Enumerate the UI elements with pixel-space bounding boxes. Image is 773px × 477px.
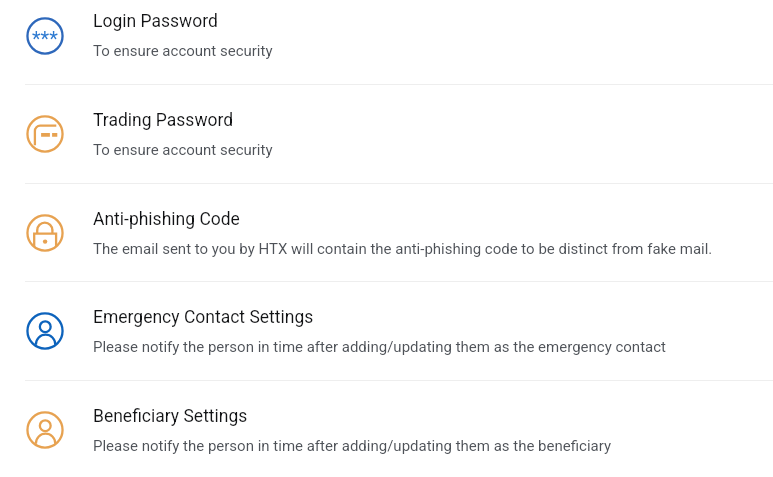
- staticText: To ensure account security: [93, 141, 273, 159]
- staticText: Trading Password: [93, 110, 234, 131]
- staticText: Emergency Contact Settings: [93, 307, 314, 328]
- staticText: Beneficiary Settings: [93, 406, 248, 427]
- button[interactable]: Trading Password: [0, 85, 773, 184]
- button[interactable]: Anti-phishing Code: [0, 184, 773, 283]
- staticText: Please notify the person in time after a…: [93, 437, 612, 455]
- staticText: The email sent to you by HTX will contai…: [93, 240, 713, 258]
- staticText: ***: [32, 27, 58, 50]
- button[interactable]: ***: [0, 0, 773, 85]
- staticText: To ensure account security: [93, 42, 273, 60]
- button[interactable]: Emergency Contact Settings: [0, 282, 773, 381]
- staticText: Anti-phishing Code: [93, 209, 240, 230]
- button[interactable]: Beneficiary Settings: [0, 381, 773, 477]
- staticText: Please notify the person in time after a…: [93, 338, 666, 356]
- staticText: Login Password: [93, 11, 218, 32]
